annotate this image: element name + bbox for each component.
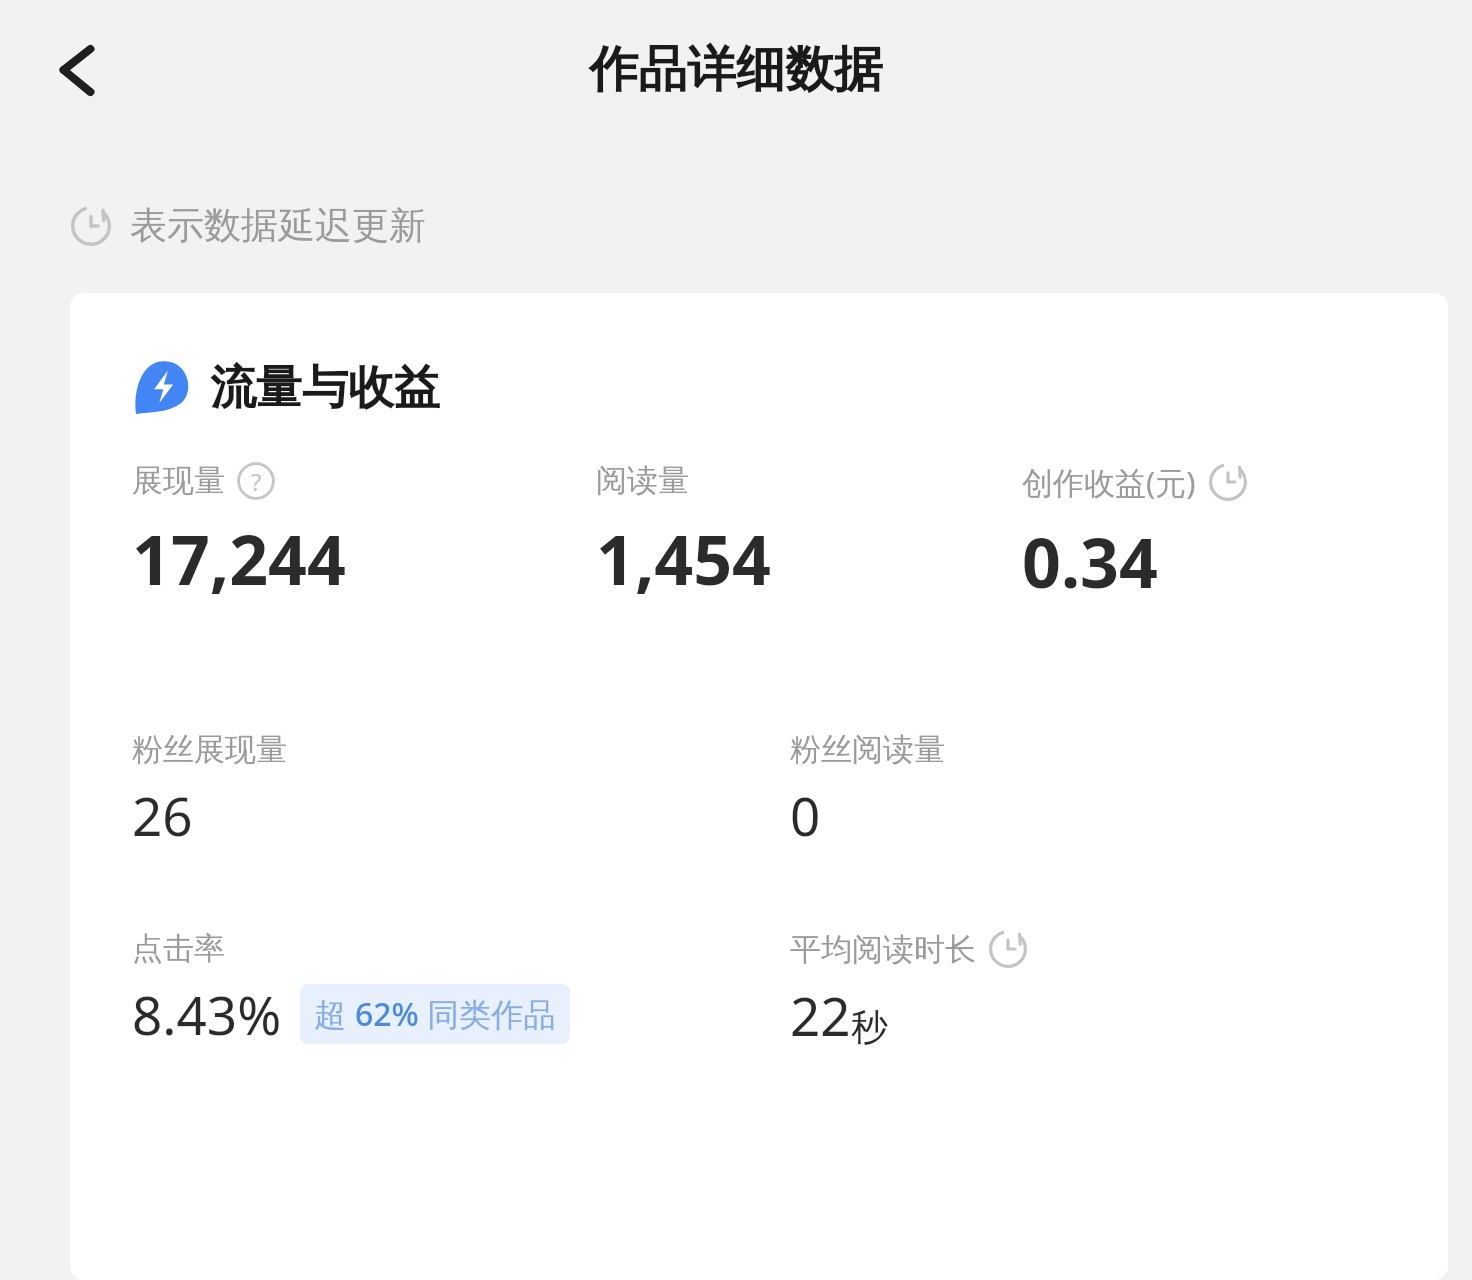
staticText: 22	[790, 979, 851, 1051]
staticText: 同类作品	[419, 992, 556, 1036]
staticText: 粉丝阅读量	[790, 730, 945, 769]
staticText: 8.43%	[132, 978, 282, 1050]
staticText: 作品详细数据	[589, 39, 883, 101]
staticText: 表示数据延迟更新	[130, 202, 426, 249]
button[interactable]: 说明	[237, 462, 275, 500]
staticText: 阅读量	[596, 461, 689, 500]
staticText: 点击率	[132, 929, 225, 968]
staticText: 0.34	[1022, 515, 1158, 608]
staticText: 粉丝展现量	[132, 730, 287, 769]
button[interactable]: 返回	[36, 28, 120, 112]
staticText: 创作收益(元)	[1022, 461, 1196, 503]
staticText: 62%	[355, 992, 419, 1036]
staticText: 平均阅读时长	[790, 930, 976, 969]
staticText: ?	[251, 465, 262, 498]
staticText: 0	[790, 779, 821, 851]
staticText: 展现量	[132, 461, 225, 500]
button[interactable]: 超	[300, 984, 570, 1044]
staticText: 流量与收益	[210, 359, 440, 417]
staticText: 17,244	[132, 512, 346, 605]
staticText: 秒	[851, 1004, 888, 1051]
staticText: 1,454	[596, 512, 771, 605]
staticText: 超	[314, 992, 355, 1036]
button[interactable]: 流量与收益	[132, 359, 440, 417]
staticText: 26	[132, 779, 193, 851]
